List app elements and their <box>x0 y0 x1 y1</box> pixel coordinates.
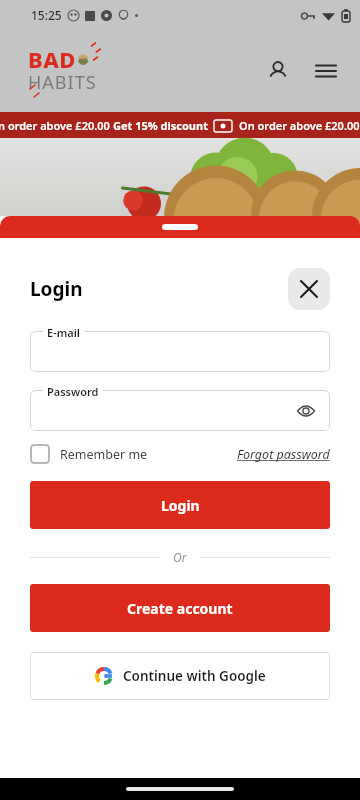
staticText: Login <box>161 496 200 515</box>
staticText: HABITS <box>28 70 97 95</box>
button[interactable]: Account <box>264 57 292 85</box>
staticText: Login <box>30 276 83 302</box>
staticText: Create account <box>127 599 233 618</box>
button[interactable]: Menu <box>312 57 340 85</box>
staticText: Forgot password <box>237 446 330 463</box>
button[interactable] <box>30 331 330 372</box>
staticText: Remember me <box>60 446 148 463</box>
button[interactable]: Close <box>288 268 330 310</box>
button[interactable]: Show password <box>294 399 318 423</box>
staticText: On order above £20.00 <box>239 118 360 133</box>
staticText: Continue with Google <box>123 667 266 685</box>
staticText: 15:25 <box>31 7 62 23</box>
staticText: Or <box>173 549 187 565</box>
button[interactable]: Continue with Google <box>30 652 330 700</box>
staticText: BAD <box>28 44 76 74</box>
button[interactable]: Login <box>30 481 330 529</box>
button[interactable]: Create account <box>30 584 330 632</box>
staticText: E-mail <box>47 325 80 340</box>
staticText: Get 15% discount <box>113 118 208 133</box>
button[interactable]: Drag handle <box>0 216 360 238</box>
button[interactable]: Forgot password <box>237 446 330 463</box>
button[interactable]: Show password <box>30 390 330 431</box>
button[interactable]: Remember me <box>30 444 148 464</box>
staticText: Password <box>47 384 99 399</box>
staticText: n order above £20.00 <box>0 118 110 133</box>
